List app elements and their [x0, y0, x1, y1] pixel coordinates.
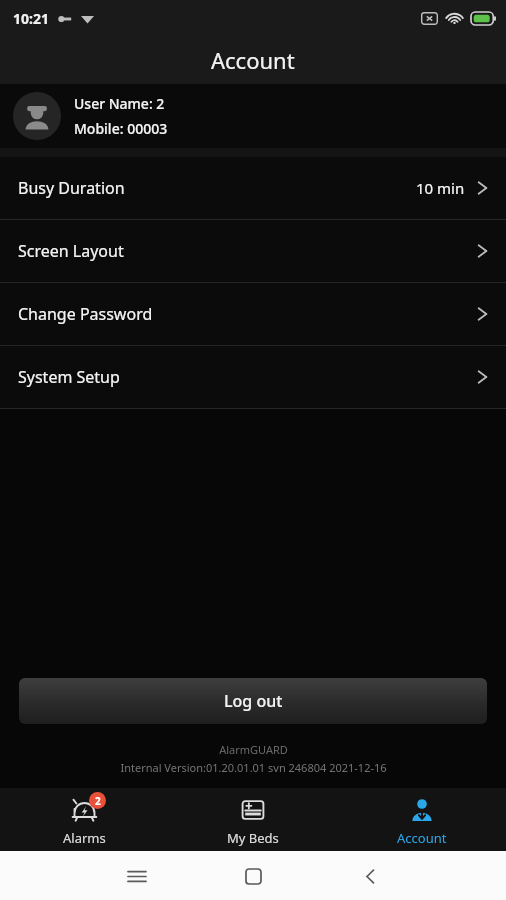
button[interactable]: Recents — [117, 856, 157, 896]
staticText: AlarmGUARD — [219, 742, 288, 757]
staticText: Change Password — [18, 303, 153, 325]
button[interactable]: My Beds — [168, 788, 337, 851]
staticText: Account — [211, 45, 295, 75]
button[interactable]: Home — [233, 856, 273, 896]
button[interactable]: System Setup — [0, 346, 506, 408]
staticText: 10 min — [416, 178, 465, 198]
button[interactable]: Alarms — [0, 788, 168, 851]
staticText: Busy Duration — [18, 177, 125, 199]
staticText: Internal Version:01.20.01.01 svn 246804 … — [120, 760, 387, 775]
staticText: Account — [397, 829, 447, 847]
button[interactable]: User Name: 2 — [0, 84, 506, 148]
staticText: Screen Layout — [18, 240, 124, 262]
other: My Beds — [240, 797, 266, 823]
button[interactable]: Account — [337, 788, 506, 851]
staticText: My Beds — [227, 829, 279, 847]
staticText: User Name: 2 — [74, 94, 165, 113]
other: Account — [409, 797, 435, 823]
staticText: Mobile: 00003 — [74, 119, 168, 138]
button[interactable]: Log out — [19, 678, 487, 724]
other: Alarms — [71, 797, 98, 824]
button[interactable]: Back — [350, 856, 390, 896]
staticText: Log out — [224, 690, 283, 712]
staticText: 10:21 — [13, 9, 49, 28]
staticText: System Setup — [18, 366, 120, 388]
button[interactable]: Busy Duration — [0, 157, 506, 219]
button[interactable]: Change Password — [0, 283, 506, 345]
staticText: 2 — [95, 794, 101, 808]
button[interactable]: Screen Layout — [0, 220, 506, 282]
staticText: Alarms — [63, 829, 106, 847]
